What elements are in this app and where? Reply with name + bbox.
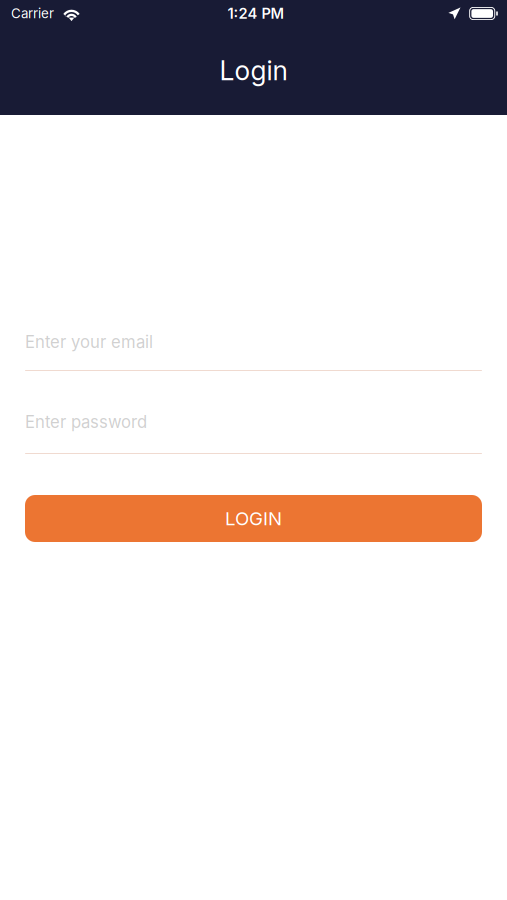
staticText: Enter your email [25, 332, 153, 352]
button[interactable]: Enter password [25, 412, 482, 454]
button[interactable]: LOGIN [25, 495, 482, 542]
staticText: Enter password [25, 412, 147, 432]
staticText: LOGIN [225, 507, 282, 530]
staticText: Carrier [11, 5, 54, 21]
staticText: Login [219, 54, 287, 87]
button[interactable]: Enter your email [25, 332, 482, 371]
staticText: 1:24 PM [228, 5, 285, 22]
